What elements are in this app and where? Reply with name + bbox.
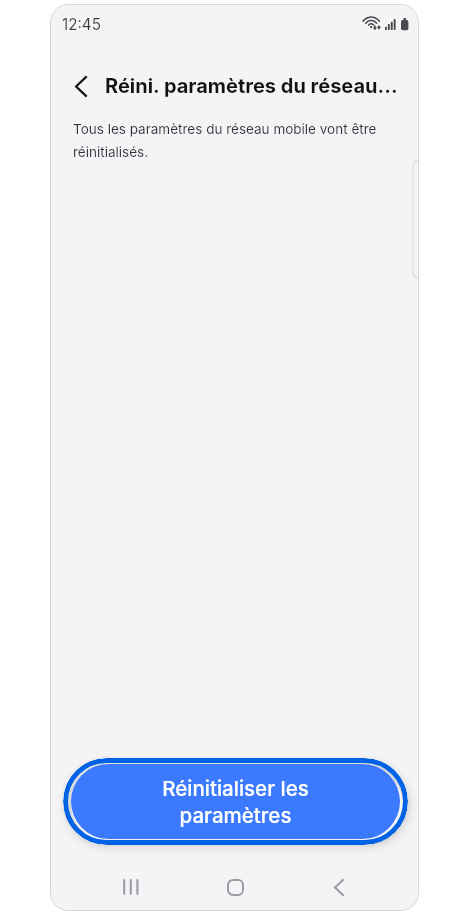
button[interactable]: Back: [64, 64, 98, 108]
button[interactable]: Back: [311, 863, 367, 911]
staticText: Réinitialiser les paramètres: [162, 776, 309, 828]
button[interactable]: Réinitialiser les paramètres: [71, 764, 400, 839]
staticText: Réini. paramètres du réseau...: [105, 74, 398, 98]
staticText: Tous les paramètres du réseau mobile von…: [73, 121, 385, 161]
button[interactable]: Home: [207, 863, 263, 911]
staticText: 12:45: [62, 15, 101, 33]
button[interactable]: Recent apps: [103, 863, 159, 911]
